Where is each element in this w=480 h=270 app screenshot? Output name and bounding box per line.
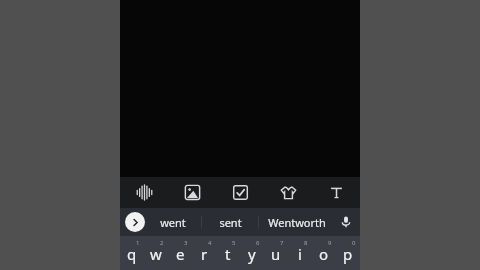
staticText: 6 xyxy=(256,239,260,247)
staticText: p xyxy=(343,244,353,264)
button[interactable]: 3 xyxy=(168,236,192,270)
staticText: Wentworth xyxy=(268,215,326,230)
button[interactable]: 8 xyxy=(288,236,312,270)
button[interactable]: Checklist xyxy=(216,177,264,208)
staticText: q xyxy=(127,244,137,264)
staticText: 7 xyxy=(280,239,284,247)
button[interactable]: Insert image xyxy=(168,177,216,208)
button[interactable]: 4 xyxy=(192,236,216,270)
button[interactable]: 5 xyxy=(216,236,240,270)
staticText: o xyxy=(319,244,329,264)
button[interactable]: Text formatting xyxy=(312,177,360,208)
button[interactable]: 0 xyxy=(336,236,360,270)
button[interactable]: 6 xyxy=(240,236,264,270)
staticText: 1 xyxy=(136,239,140,247)
staticText: 3 xyxy=(184,239,188,247)
button[interactable]: Expand suggestions xyxy=(125,212,145,232)
staticText: t xyxy=(225,244,231,264)
staticText: e xyxy=(176,244,185,264)
staticText: 2 xyxy=(160,239,164,247)
button[interactable]: 7 xyxy=(264,236,288,270)
staticText: 8 xyxy=(304,239,308,247)
staticText: 5 xyxy=(232,239,236,247)
button[interactable]: Voice input xyxy=(335,208,357,236)
staticText: w xyxy=(150,244,162,264)
staticText: 4 xyxy=(208,239,212,247)
button[interactable]: Stickers xyxy=(264,177,312,208)
button[interactable]: 1 xyxy=(120,236,144,270)
button[interactable]: went xyxy=(145,208,201,236)
staticText: 0 xyxy=(352,239,356,247)
staticText: u xyxy=(271,244,281,264)
staticText: r xyxy=(201,244,208,264)
button[interactable]: 2 xyxy=(144,236,168,270)
button[interactable]: Voice message xyxy=(120,177,168,208)
button[interactable]: sent xyxy=(202,208,258,236)
button[interactable]: 9 xyxy=(312,236,336,270)
button[interactable]: Wentworth xyxy=(259,208,335,236)
staticText: went xyxy=(160,215,186,230)
staticText: sent xyxy=(219,215,242,230)
staticText: 9 xyxy=(328,239,332,247)
staticText: i xyxy=(298,244,302,264)
staticText: y xyxy=(248,244,256,264)
